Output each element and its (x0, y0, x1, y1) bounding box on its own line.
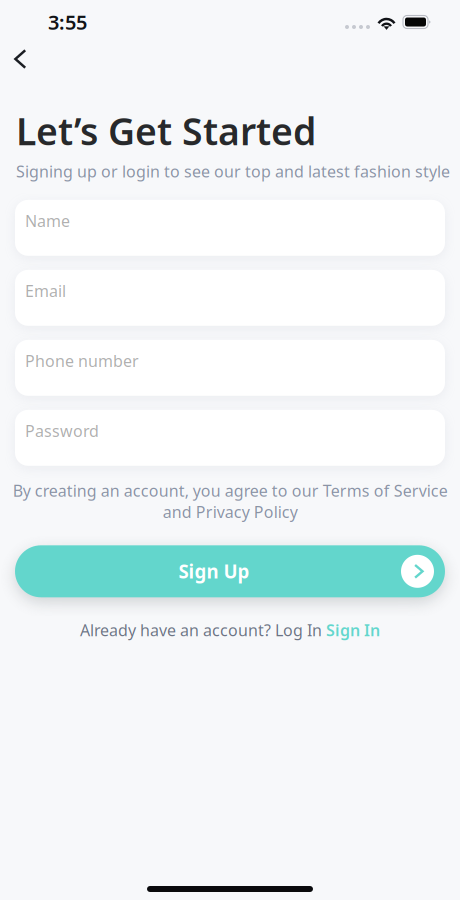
staticText: 3:55 (48, 9, 87, 35)
staticText: Password (25, 420, 99, 441)
button[interactable]: Password (15, 410, 445, 466)
staticText: Sign Up (178, 559, 249, 584)
staticText: Signing up or login to see our top and l… (16, 161, 450, 182)
button[interactable]: Back (0, 44, 48, 74)
staticText: By creating an account, you agree to our… (12, 480, 447, 522)
button[interactable]: Sign Up (15, 545, 445, 597)
button[interactable]: Name (15, 200, 445, 256)
staticText: Sign In (326, 619, 380, 640)
staticText: Let’s Get Started (16, 106, 316, 156)
staticText: Phone number (25, 350, 139, 371)
button[interactable]: Email (15, 270, 445, 326)
button[interactable]: Phone number (15, 340, 445, 396)
staticText: Name (25, 210, 70, 231)
staticText: Already have an account? Log In (80, 619, 322, 640)
staticText: Email (25, 280, 66, 301)
button[interactable]: Sign In (326, 616, 380, 643)
